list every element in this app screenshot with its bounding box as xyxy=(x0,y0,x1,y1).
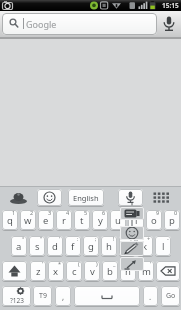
staticText: x xyxy=(53,265,59,278)
button[interactable]: . xyxy=(143,286,158,306)
button[interactable]: z xyxy=(30,261,46,281)
staticText: 6 xyxy=(102,209,106,216)
button[interactable] xyxy=(7,190,31,206)
button[interactable]: y xyxy=(92,210,108,230)
button[interactable]: j xyxy=(119,236,135,256)
button[interactable]: English xyxy=(68,189,104,206)
button[interactable]: f xyxy=(65,236,81,256)
button[interactable]: T9 xyxy=(33,286,52,306)
button[interactable] xyxy=(157,11,181,37)
staticText: English xyxy=(73,193,99,203)
button[interactable]: p xyxy=(164,210,180,230)
staticText: r xyxy=(62,214,66,227)
button[interactable]: ?123 xyxy=(2,286,31,306)
staticText: ( xyxy=(78,260,80,267)
staticText: h xyxy=(106,240,112,253)
button[interactable] xyxy=(2,261,27,281)
staticText: 0 xyxy=(174,209,178,216)
button[interactable] xyxy=(152,191,172,205)
button[interactable]: o xyxy=(146,210,162,230)
button[interactable]: , xyxy=(55,286,71,306)
staticText: + xyxy=(147,235,151,242)
staticText: 15:15 xyxy=(162,1,179,10)
staticText: k xyxy=(142,240,148,253)
staticText: ° xyxy=(22,235,25,242)
staticText: 1 xyxy=(12,209,16,216)
button[interactable] xyxy=(37,189,62,206)
button[interactable]: l xyxy=(155,236,171,256)
staticText: d xyxy=(52,240,58,253)
button[interactable]: Google xyxy=(2,13,157,35)
staticText: 3 xyxy=(48,209,52,216)
button[interactable]: x xyxy=(48,261,64,281)
button[interactable]: w xyxy=(20,210,36,230)
button[interactable]: d xyxy=(47,236,63,256)
button[interactable]: u xyxy=(110,210,126,230)
button[interactable]: k xyxy=(137,236,153,256)
staticText: ! xyxy=(113,235,115,242)
button[interactable]: r xyxy=(56,210,72,230)
staticText: a xyxy=(16,240,22,253)
staticText: ' xyxy=(42,260,44,267)
staticText: : xyxy=(77,235,79,242)
staticText: 4 xyxy=(66,209,70,216)
button[interactable] xyxy=(118,189,143,206)
staticText: . xyxy=(149,291,152,302)
staticText: 7 xyxy=(120,209,124,216)
staticText: ' xyxy=(150,260,152,267)
button[interactable]: t xyxy=(74,210,90,230)
staticText: , xyxy=(62,291,65,302)
staticText: g xyxy=(88,240,94,253)
staticText: m xyxy=(142,265,151,278)
staticText: Go xyxy=(166,291,176,301)
staticText: ) xyxy=(96,260,98,267)
staticText: e xyxy=(43,214,49,227)
button[interactable]: q xyxy=(2,210,18,230)
button[interactable] xyxy=(120,241,144,256)
staticText: ' xyxy=(59,235,61,242)
staticText: c xyxy=(72,265,77,278)
button[interactable]: g xyxy=(83,236,99,256)
button[interactable]: a xyxy=(11,236,27,256)
staticText: 5 xyxy=(84,209,88,216)
button[interactable]: c xyxy=(66,261,82,281)
staticText: " xyxy=(40,235,43,242)
button[interactable] xyxy=(120,257,144,271)
button[interactable] xyxy=(74,286,140,306)
staticText: i xyxy=(135,214,138,227)
button[interactable]: m xyxy=(138,261,154,281)
button[interactable]: s xyxy=(29,236,45,256)
button[interactable]: v xyxy=(84,261,100,281)
staticText: 9 xyxy=(156,209,160,216)
staticText: w xyxy=(24,214,32,227)
staticText: _ xyxy=(113,260,116,267)
staticText: - xyxy=(167,235,169,242)
button[interactable] xyxy=(120,207,144,220)
staticText: j xyxy=(126,240,129,253)
button[interactable]: n xyxy=(120,261,136,281)
button[interactable]: e xyxy=(38,210,54,230)
staticText: z xyxy=(36,265,41,278)
staticText: q xyxy=(7,214,13,227)
button[interactable] xyxy=(120,226,144,240)
button[interactable] xyxy=(156,261,180,281)
staticText: y xyxy=(98,214,103,227)
staticText: * xyxy=(58,260,62,267)
button[interactable]: h xyxy=(101,236,117,256)
button[interactable]: b xyxy=(102,261,118,281)
staticText: 2 xyxy=(30,209,34,216)
staticText: o xyxy=(151,214,157,227)
staticText: b xyxy=(107,265,113,278)
button[interactable]: Go xyxy=(161,286,180,306)
staticText: ?123 xyxy=(10,296,24,305)
staticText: f xyxy=(71,240,75,253)
staticText: t xyxy=(80,214,84,227)
staticText: v xyxy=(90,265,95,278)
staticText: l xyxy=(162,240,165,253)
staticText: ; xyxy=(95,235,97,242)
staticText: p xyxy=(169,214,175,227)
staticText: Google xyxy=(26,18,57,30)
staticText: ? xyxy=(130,235,133,242)
button[interactable]: i xyxy=(128,210,144,230)
staticText: 8 xyxy=(138,209,142,216)
